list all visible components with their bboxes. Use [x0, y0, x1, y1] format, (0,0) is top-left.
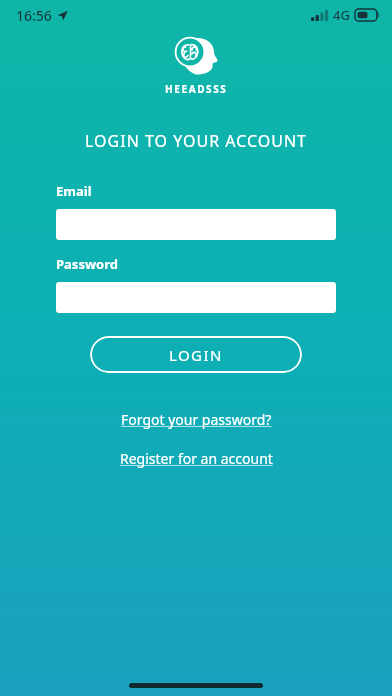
staticText: 16:56 — [16, 6, 52, 25]
other: HEEADSSS logo — [166, 36, 226, 76]
staticText: Password — [56, 255, 118, 273]
staticText: HEEADSSS — [165, 82, 228, 96]
staticText: LOGIN TO YOUR ACCOUNT — [85, 130, 307, 152]
button[interactable] — [56, 209, 336, 240]
button[interactable]: LOGIN — [90, 336, 302, 373]
staticText: Email — [56, 182, 92, 200]
staticText: LOGIN — [169, 345, 223, 365]
button[interactable]: Register for an account — [118, 448, 275, 469]
staticText: Forgot your password? — [121, 410, 272, 429]
staticText: 4G — [333, 6, 350, 24]
button[interactable] — [56, 282, 336, 313]
button[interactable]: Forgot your password? — [119, 409, 274, 430]
staticText: Register for an account — [120, 449, 273, 468]
